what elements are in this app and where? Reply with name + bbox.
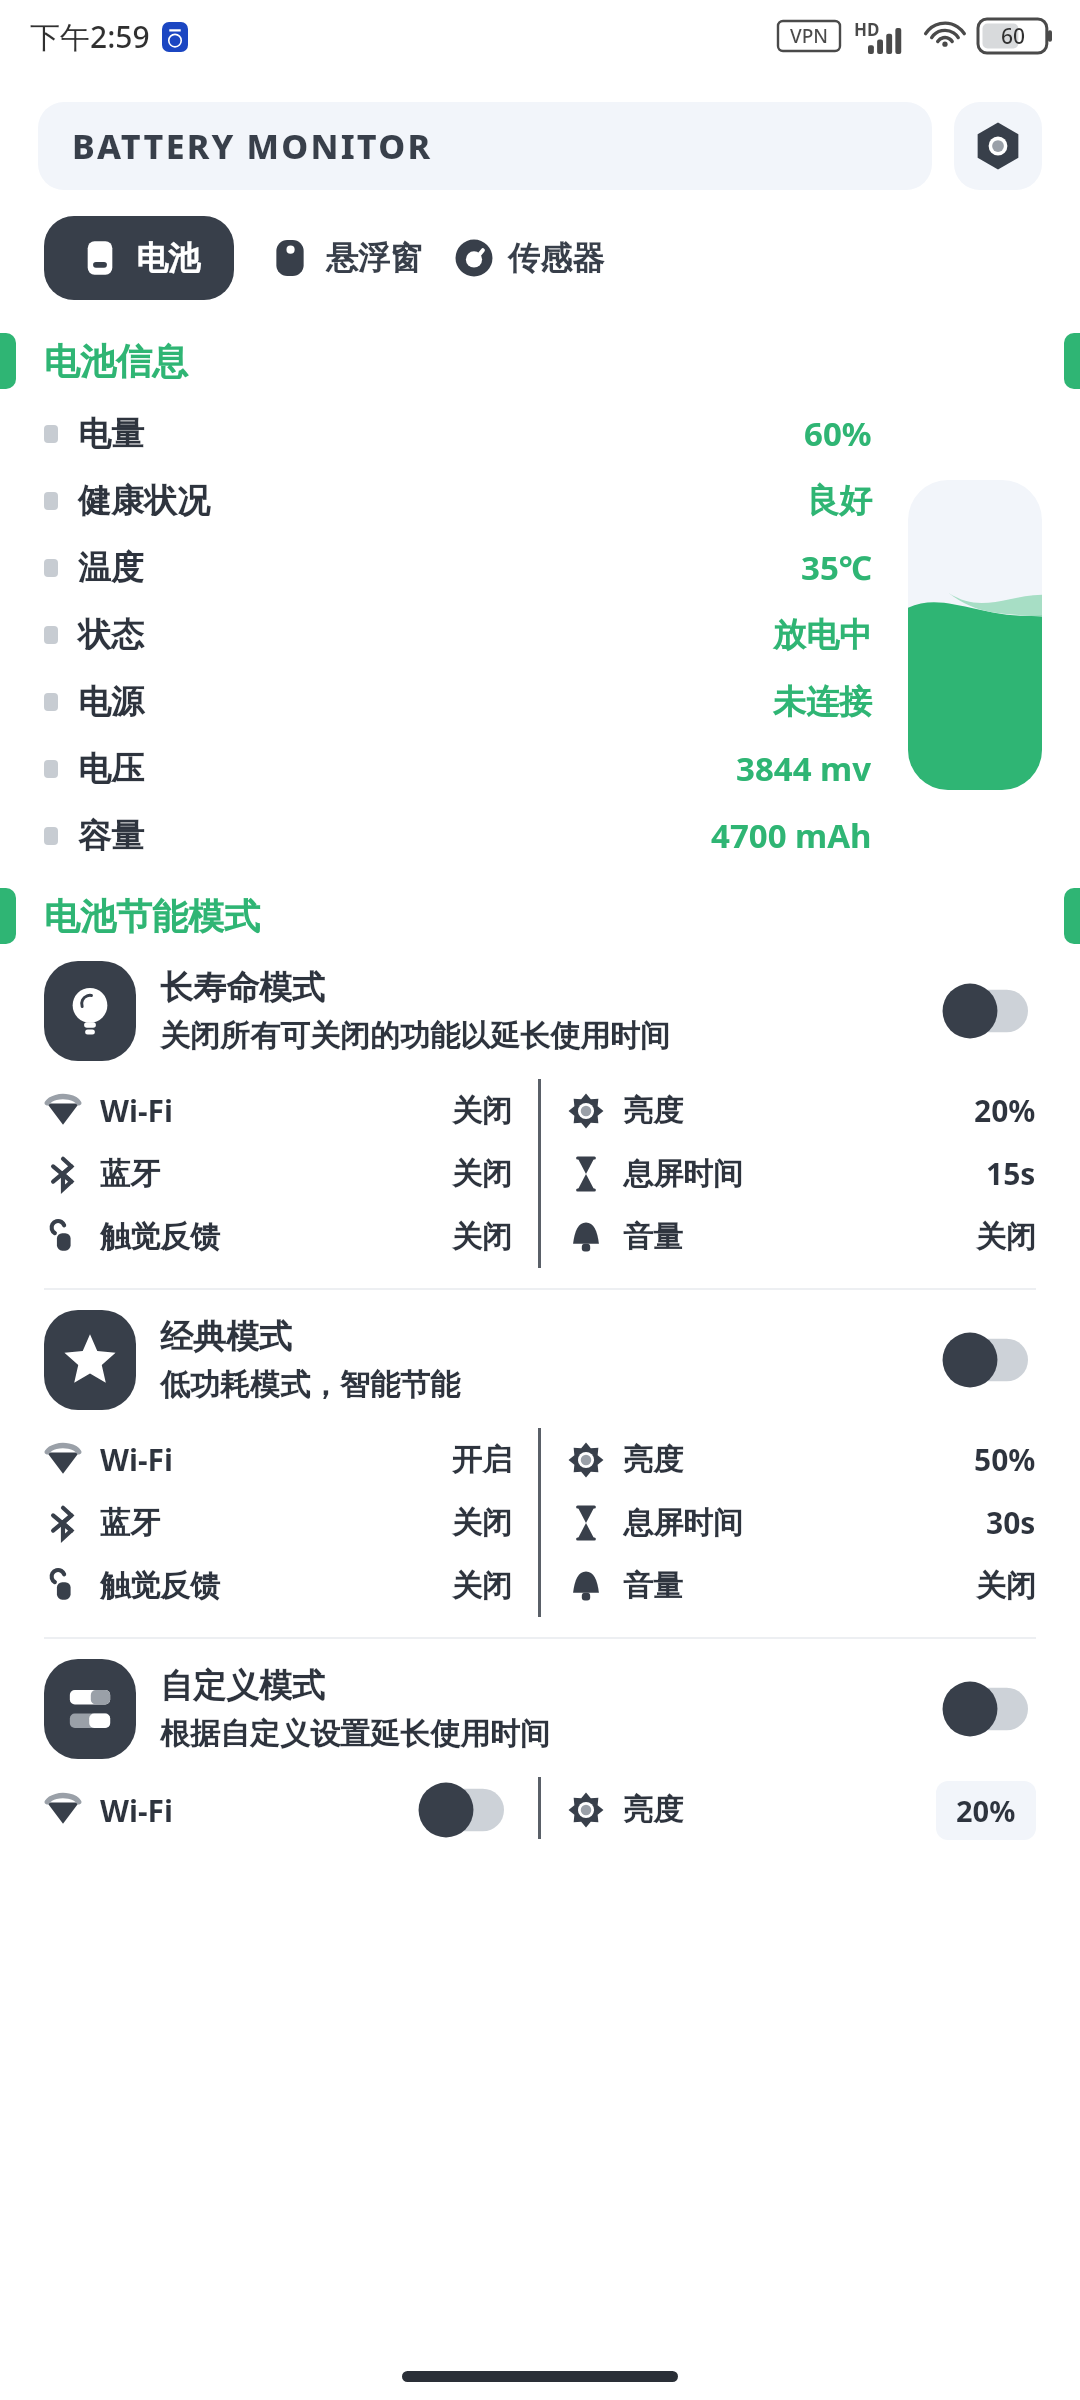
staticText: 关闭 [976,1567,1036,1605]
button[interactable]: 息屏时间 [567,1142,1036,1205]
staticText: 电池信息 [44,339,188,384]
button[interactable]: 蓝牙 [44,1142,512,1205]
staticText: Wi-Fi [100,1090,174,1131]
staticText: 息屏时间 [623,1155,743,1193]
staticText: 触觉反馈 [100,1218,220,1256]
button[interactable]: 电量 [44,400,872,467]
button[interactable]: 悬浮窗 [268,220,422,296]
staticText: 关闭 [452,1218,512,1256]
staticText: 关闭 [452,1567,512,1605]
staticText: 放电中 [773,614,872,656]
staticText: 开启 [452,1441,512,1479]
staticText: 电池 [136,238,200,278]
staticText: 关闭 [452,1504,512,1542]
staticText: 悬浮窗 [326,238,422,278]
staticText: 低功耗模式，智能节能 [160,1366,460,1404]
staticText: 经典模式 [160,1316,292,1358]
staticText: 长寿命模式 [160,967,325,1009]
button[interactable]: 音量 [567,1205,1036,1268]
button[interactable]: Toggle [936,1332,1036,1388]
staticText: 良好 [806,480,872,522]
button[interactable]: 容量 [44,802,872,869]
staticText: 容量 [78,815,144,857]
button[interactable]: 长寿命模式 [44,961,1036,1061]
staticText: 蓝牙 [100,1155,160,1193]
staticText: 触觉反馈 [100,1567,220,1605]
staticText: 60% [804,411,872,456]
staticText: 亮度 [623,1791,683,1829]
staticText: 电池节能模式 [44,894,260,939]
staticText: 音量 [623,1567,683,1605]
staticText: 15s [986,1153,1036,1194]
staticText: 关闭所有可关闭的功能以延长使用时间 [160,1017,670,1055]
button[interactable]: Wi-Fi [44,1428,512,1491]
button[interactable]: BATTERY MONITOR [38,102,932,190]
staticText: Wi-Fi [100,1790,174,1831]
staticText: 35℃ [801,545,872,590]
button[interactable]: 电压 [44,735,872,802]
staticText: 关闭 [452,1155,512,1193]
button[interactable]: 息屏时间 [567,1491,1036,1554]
staticText: 温度 [78,547,144,589]
staticText: 3844 mv [736,746,872,791]
staticText: 30s [986,1502,1036,1543]
button[interactable]: Wi-Fi [44,1777,512,1843]
staticText: VPN [790,23,829,49]
staticText: 60 [1001,22,1026,51]
button[interactable]: 亮度 [567,1079,1036,1142]
button[interactable]: 自定义模式 [44,1659,1036,1759]
staticText: 传感器 [508,238,604,278]
staticText: 电压 [78,748,144,790]
staticText: 自定义模式 [160,1665,325,1707]
staticText: BATTERY MONITOR [72,123,433,169]
staticText: 4700 mAh [711,813,872,858]
staticText: 亮度 [623,1092,683,1130]
button[interactable]: 音量 [567,1554,1036,1617]
staticText: 关闭 [976,1218,1036,1256]
button[interactable]: Settings [954,102,1042,190]
button[interactable]: 蓝牙 [44,1491,512,1554]
button[interactable]: 状态 [44,601,872,668]
button[interactable]: 电池 [44,216,234,300]
button[interactable]: 亮度 [567,1777,1036,1843]
button[interactable]: 20% [936,1781,1036,1840]
button[interactable]: 电源 [44,668,872,735]
button[interactable]: 触觉反馈 [44,1205,512,1268]
staticText: 20% [956,1791,1016,1830]
staticText: 息屏时间 [623,1504,743,1542]
button[interactable]: Wi-Fi [44,1079,512,1142]
staticText: 健康状况 [78,480,210,522]
button[interactable]: Toggle [936,1681,1036,1737]
button[interactable]: 触觉反馈 [44,1554,512,1617]
button[interactable]: 亮度 [567,1428,1036,1491]
button[interactable]: 传感器 [452,220,604,296]
staticText: 电量 [78,413,144,455]
staticText: 关闭 [452,1092,512,1130]
staticText: 未连接 [773,681,872,723]
staticText: 电源 [78,681,144,723]
staticText: 状态 [78,614,144,656]
button[interactable]: 温度 [44,534,872,601]
staticText: 下午2:59 [30,16,150,57]
staticText: 根据自定义设置延长使用时间 [160,1715,550,1753]
staticText: HD [854,18,880,41]
staticText: 蓝牙 [100,1504,160,1542]
button[interactable]: Toggle [412,1782,512,1838]
staticText: 50% [974,1439,1036,1480]
button[interactable]: 健康状况 [44,467,872,534]
button[interactable]: 经典模式 [44,1310,1036,1410]
staticText: 20% [974,1090,1036,1131]
staticText: Wi-Fi [100,1439,174,1480]
staticText: 音量 [623,1218,683,1256]
button[interactable]: Toggle [936,983,1036,1039]
staticText: 亮度 [623,1441,683,1479]
